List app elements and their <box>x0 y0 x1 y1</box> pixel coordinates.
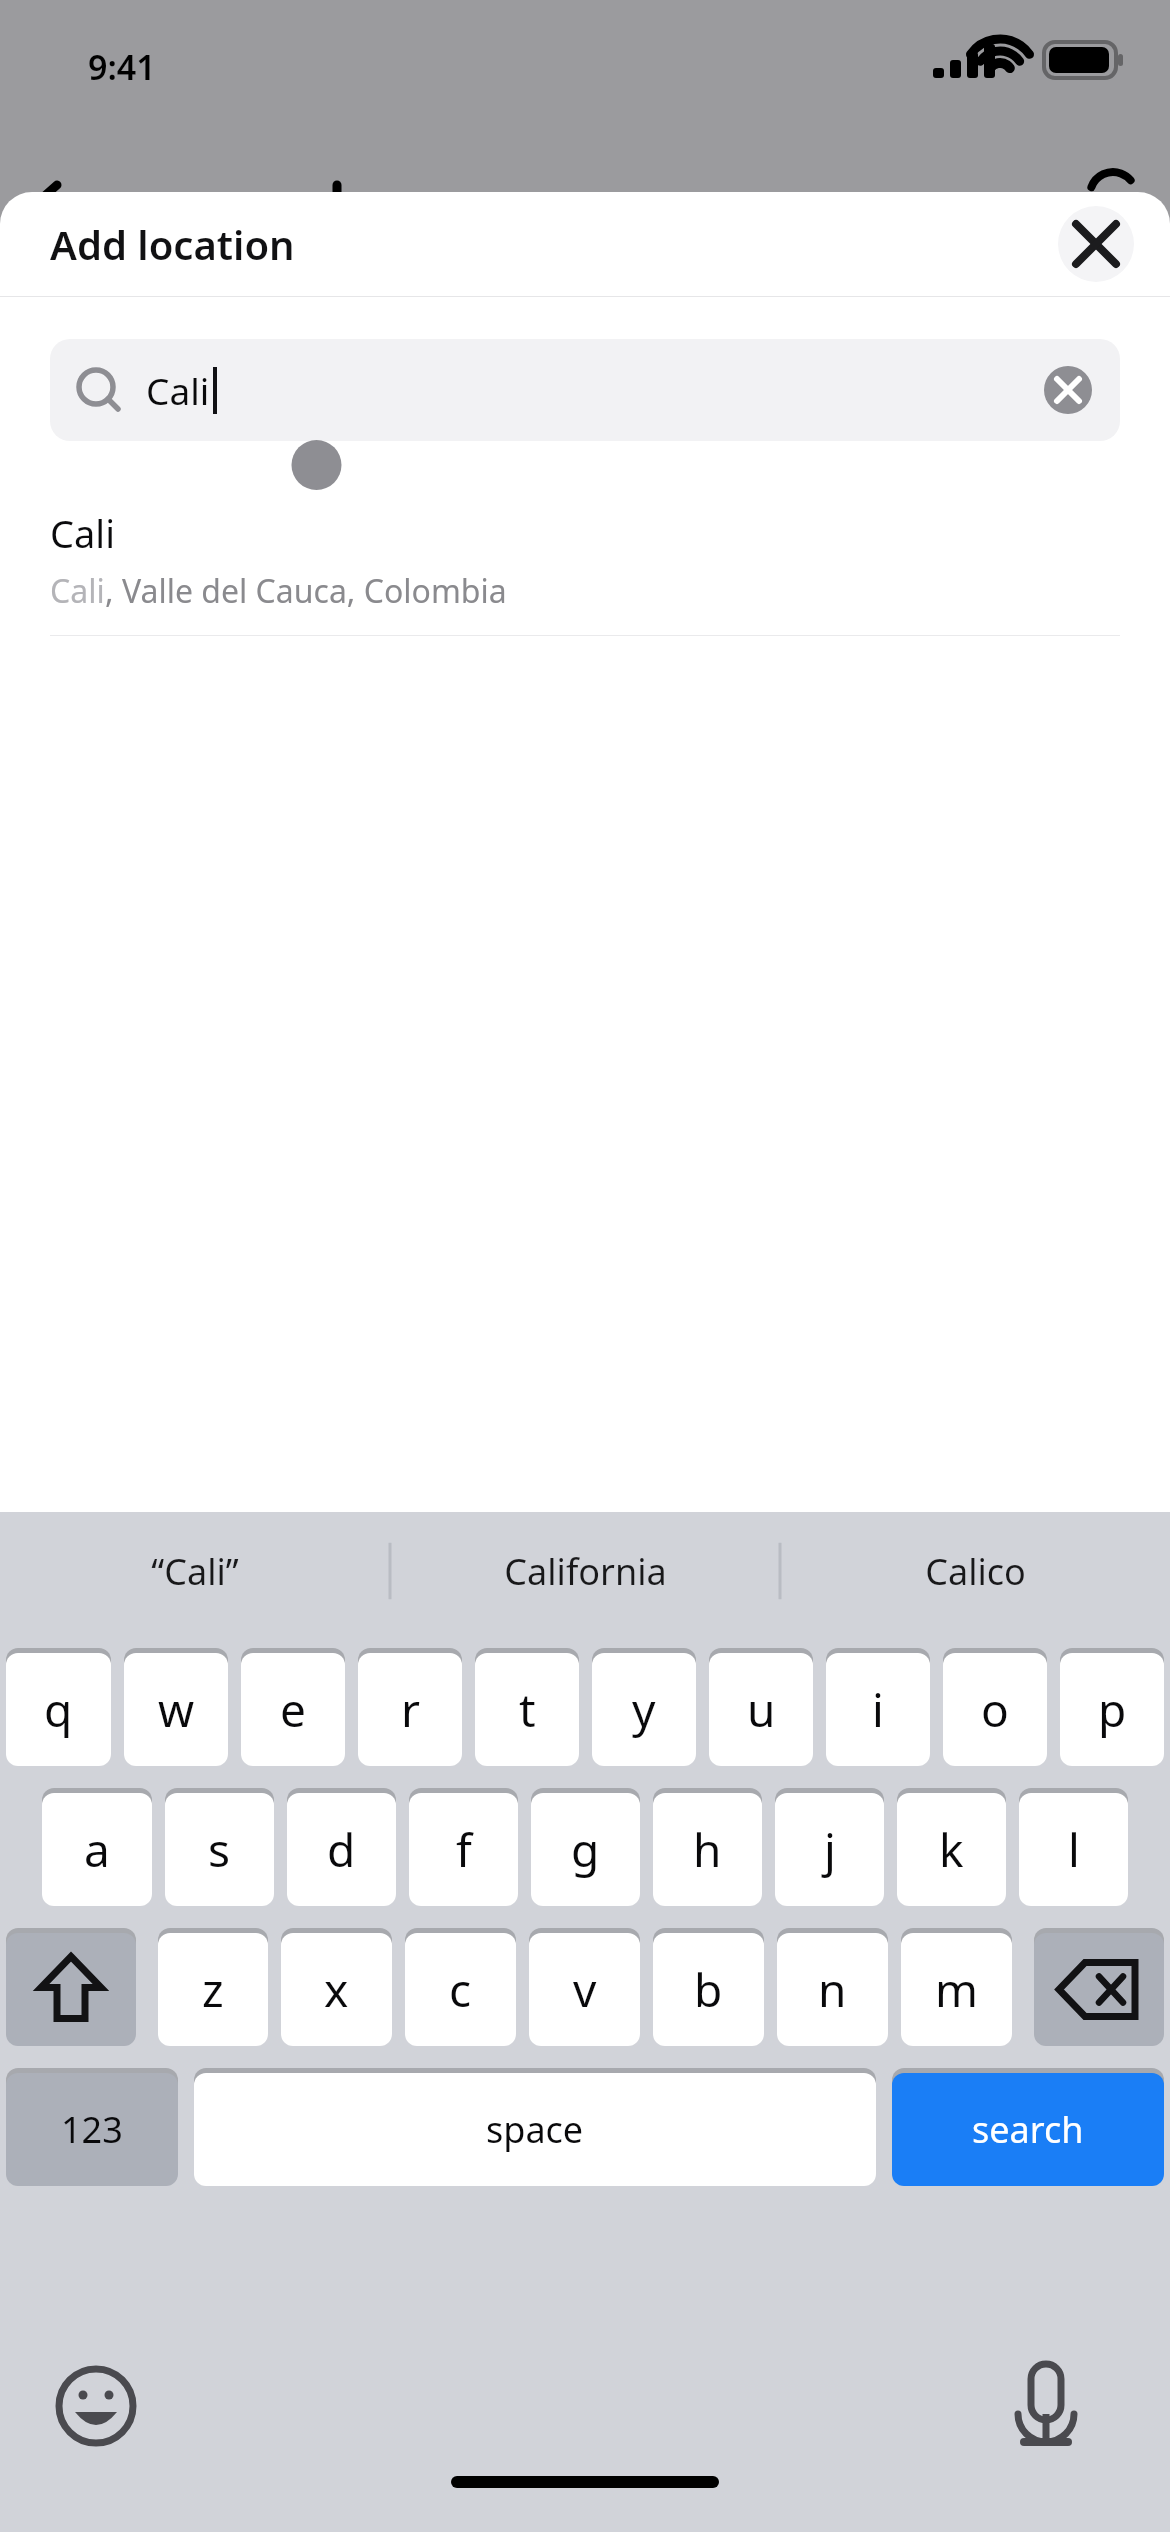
button[interactable]: w <box>124 1653 228 1766</box>
button[interactable]: n <box>777 1933 888 2046</box>
button[interactable]: z <box>158 1933 268 2046</box>
staticText: b <box>694 1958 723 2021</box>
button[interactable]: Calico <box>780 1512 1170 1630</box>
staticText: u <box>747 1678 776 1741</box>
staticText: z <box>202 1958 224 2021</box>
button[interactable]: b <box>653 1933 764 2046</box>
staticText: a <box>84 1818 110 1881</box>
button[interactable]: Cali <box>50 339 1120 441</box>
button[interactable]: k <box>897 1793 1006 1906</box>
staticText: m <box>935 1958 979 2021</box>
staticText: q <box>44 1678 73 1741</box>
staticText: o <box>981 1678 1009 1741</box>
button[interactable]: f <box>409 1793 518 1906</box>
button[interactable]: j <box>775 1793 884 1906</box>
staticText: space <box>486 2105 584 2154</box>
staticText: d <box>327 1818 356 1881</box>
button[interactable]: r <box>358 1653 462 1766</box>
staticText: e <box>280 1678 306 1741</box>
button[interactable]: v <box>529 1933 640 2046</box>
staticText: Cali <box>146 365 210 415</box>
button[interactable]: m <box>901 1933 1012 2046</box>
button[interactable]: 123 <box>6 2073 178 2186</box>
button[interactable]: c <box>405 1933 516 2046</box>
staticText: w <box>158 1678 195 1741</box>
staticText: “Cali” <box>151 1547 239 1596</box>
staticText: Add location <box>50 217 295 271</box>
button[interactable]: Cali <box>0 493 1170 635</box>
button[interactable]: t <box>475 1653 579 1766</box>
button[interactable]: h <box>653 1793 762 1906</box>
button[interactable]: Close <box>1058 206 1134 282</box>
button[interactable]: i <box>826 1653 930 1766</box>
staticText: Cali <box>50 507 115 559</box>
staticText: s <box>208 1818 231 1881</box>
button[interactable]: o <box>943 1653 1047 1766</box>
button[interactable]: g <box>531 1793 640 1906</box>
staticText: t <box>519 1678 536 1741</box>
staticText: search <box>972 2105 1084 2154</box>
button[interactable]: Backspace <box>1034 1933 1164 2046</box>
button[interactable]: p <box>1060 1653 1164 1766</box>
staticText: x <box>324 1958 349 2021</box>
staticText: p <box>1098 1678 1127 1741</box>
button[interactable]: Shift <box>6 1933 136 2046</box>
button[interactable]: e <box>241 1653 345 1766</box>
staticText: c <box>449 1958 472 2021</box>
button[interactable]: space <box>194 2073 876 2186</box>
button[interactable]: California <box>390 1512 780 1630</box>
button[interactable]: Emoji keyboard <box>50 2360 142 2452</box>
button[interactable]: s <box>165 1793 274 1906</box>
staticText: v <box>573 1958 597 2021</box>
button[interactable]: “Cali” <box>0 1512 390 1630</box>
button[interactable]: Dictation <box>1000 2360 1092 2452</box>
button[interactable]: x <box>281 1933 392 2046</box>
button[interactable]: q <box>6 1653 111 1766</box>
button[interactable]: a <box>42 1793 152 1906</box>
staticText: Cali <box>50 569 105 613</box>
button[interactable]: search <box>892 2073 1164 2186</box>
staticText: Calico <box>925 1547 1026 1596</box>
button[interactable]: Clear text <box>1044 366 1092 414</box>
staticText: k <box>939 1818 964 1881</box>
staticText: California <box>504 1547 667 1596</box>
staticText: y <box>632 1678 656 1741</box>
staticText: i <box>872 1678 884 1741</box>
staticText: , Valle del Cauca, Colombia <box>105 569 507 613</box>
staticText: r <box>401 1678 420 1741</box>
staticText: j <box>824 1818 836 1881</box>
staticText: 123 <box>61 2105 123 2154</box>
button[interactable]: u <box>709 1653 813 1766</box>
staticText: f <box>456 1818 472 1881</box>
staticText: n <box>818 1958 847 2021</box>
staticText: 9:41 <box>88 44 156 90</box>
button[interactable]: l <box>1019 1793 1128 1906</box>
button[interactable]: y <box>592 1653 696 1766</box>
button[interactable]: d <box>287 1793 396 1906</box>
staticText: g <box>571 1818 600 1881</box>
staticText: h <box>693 1818 722 1881</box>
staticText: l <box>1068 1818 1080 1881</box>
